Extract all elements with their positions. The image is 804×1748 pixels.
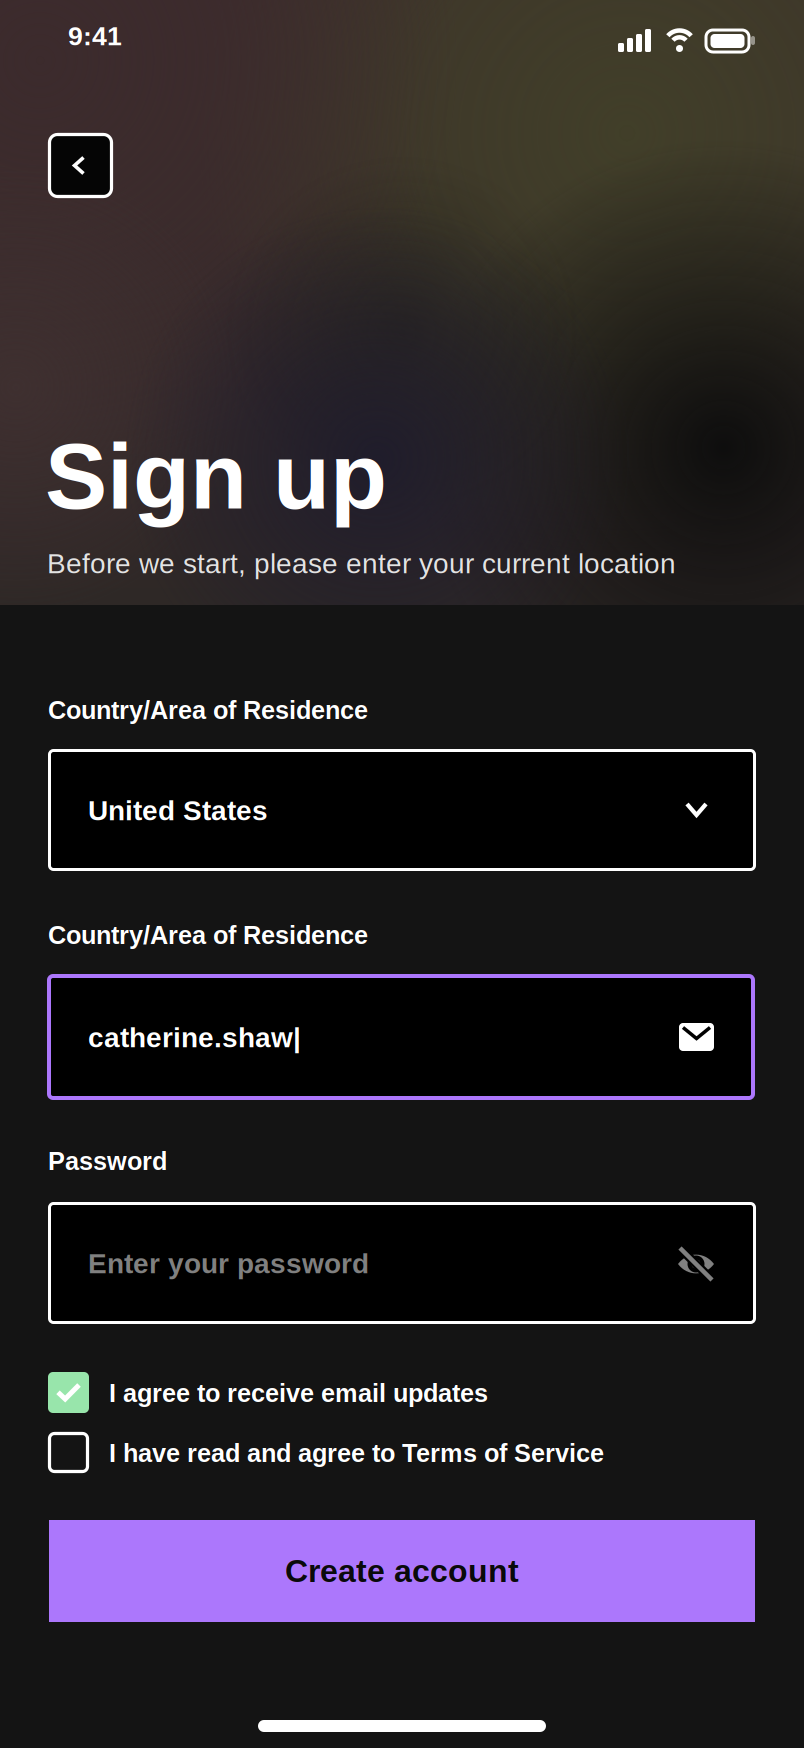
staticText: I have read and agree to Terms of Servic… (109, 1439, 604, 1467)
button[interactable]: catherine.shaw| (0, 974, 804, 1100)
button[interactable]: I agree to receive email updates (0, 1372, 700, 1413)
button[interactable]: United States (0, 749, 804, 871)
staticText: Sign up (45, 424, 387, 528)
staticText: Before we start, please enter your curre… (47, 548, 676, 579)
staticText: catherine.shaw| (88, 1022, 301, 1053)
button[interactable]: Create account (49, 1520, 755, 1622)
staticText: United States (88, 795, 268, 826)
staticText: 9:41 (68, 21, 122, 51)
staticText: Create account (285, 1553, 519, 1589)
staticText: Enter your password (88, 1248, 369, 1279)
button[interactable]: Enter your password (0, 1202, 804, 1324)
staticText: Country/Area of Residence (48, 921, 368, 949)
staticText: Password (48, 1147, 167, 1175)
staticText: Country/Area of Residence (48, 696, 368, 724)
staticText: I agree to receive email updates (109, 1379, 488, 1407)
button[interactable]: I have read and agree to Terms of Servic… (0, 1432, 700, 1473)
button[interactable]: Back (48, 133, 113, 198)
